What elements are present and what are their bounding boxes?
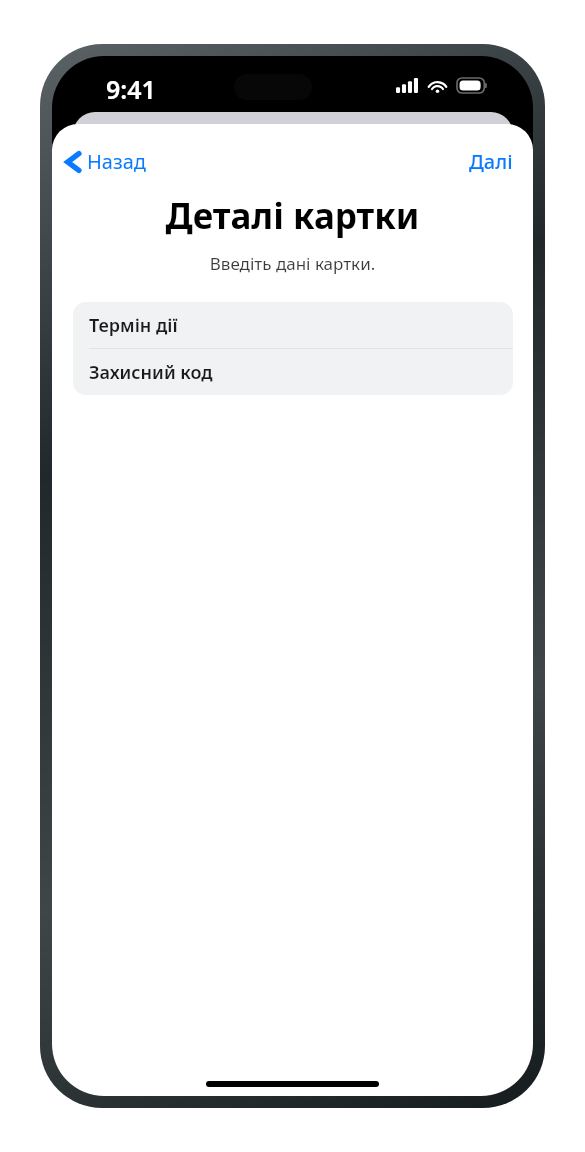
button[interactable]: Термін дії: [73, 302, 513, 348]
staticText: Введіть дані картки.: [52, 252, 533, 275]
button[interactable]: Захисний код: [73, 349, 513, 395]
staticText: 9:41: [106, 72, 156, 106]
button[interactable]: Назад: [58, 142, 154, 181]
button[interactable]: Далі: [457, 142, 525, 181]
staticText: Захисний код: [89, 360, 213, 385]
staticText: Далі: [469, 148, 513, 175]
staticText: Деталі картки: [52, 192, 533, 240]
staticText: Термін дії: [89, 313, 178, 338]
staticText: Назад: [87, 148, 146, 175]
